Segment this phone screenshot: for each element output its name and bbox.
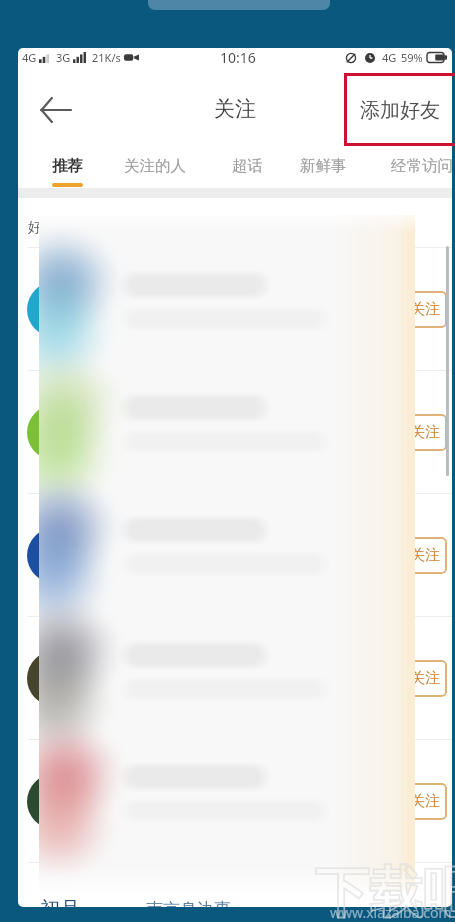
staticText: 好友推荐 bbox=[28, 219, 84, 237]
button[interactable]: 初月 bbox=[18, 863, 452, 907]
button[interactable]: 关注 bbox=[402, 660, 447, 697]
staticText: 4G bbox=[382, 50, 397, 65]
staticText: 经常访问 bbox=[391, 156, 452, 176]
button[interactable]: 超话 bbox=[222, 146, 272, 198]
staticText: 添加好友 bbox=[360, 98, 440, 123]
staticText: www.xiazaiba.com bbox=[330, 903, 452, 922]
staticText: 关注 bbox=[410, 669, 440, 688]
staticText: 21K/s bbox=[92, 50, 121, 65]
staticText: 10:16 bbox=[220, 48, 256, 67]
button[interactable]: 经常访问 bbox=[380, 146, 452, 198]
button[interactable]: 关注 bbox=[402, 537, 447, 574]
staticText: 4G bbox=[22, 50, 37, 65]
staticText: 新鲜事 bbox=[300, 156, 347, 176]
button[interactable]: 关注 bbox=[18, 617, 452, 739]
button[interactable]: 添加好友 bbox=[348, 84, 452, 137]
button[interactable]: 新鲜事 bbox=[290, 146, 357, 198]
button[interactable]: 关注 bbox=[402, 783, 447, 820]
button[interactable]: 关注 bbox=[402, 414, 447, 451]
staticText: 59% bbox=[401, 50, 423, 65]
staticText: 3G bbox=[56, 50, 71, 65]
button[interactable]: 关注 bbox=[402, 291, 447, 328]
button[interactable]: Back bbox=[18, 82, 93, 138]
staticText: 南京身边事 bbox=[146, 899, 231, 907]
staticText: 超话 bbox=[232, 156, 263, 176]
button[interactable]: 关注的人 bbox=[113, 146, 197, 198]
button[interactable]: 关注 bbox=[18, 248, 452, 370]
staticText: 关注 bbox=[410, 423, 440, 442]
staticText: 初月 bbox=[40, 897, 80, 907]
staticText: 推荐 bbox=[52, 156, 83, 176]
button[interactable]: 关注 bbox=[18, 371, 452, 493]
button[interactable]: 关注 bbox=[18, 494, 452, 616]
button[interactable]: 推荐 bbox=[42, 146, 92, 198]
button[interactable]: 关注 bbox=[18, 740, 452, 862]
staticText: 关注 bbox=[410, 792, 440, 811]
staticText: 下载吧 bbox=[315, 859, 455, 922]
staticText: 关注的人 bbox=[124, 156, 186, 176]
staticText: 关注 bbox=[410, 546, 440, 565]
staticText: 关注 bbox=[410, 300, 440, 319]
staticText: 关注 bbox=[214, 96, 256, 122]
